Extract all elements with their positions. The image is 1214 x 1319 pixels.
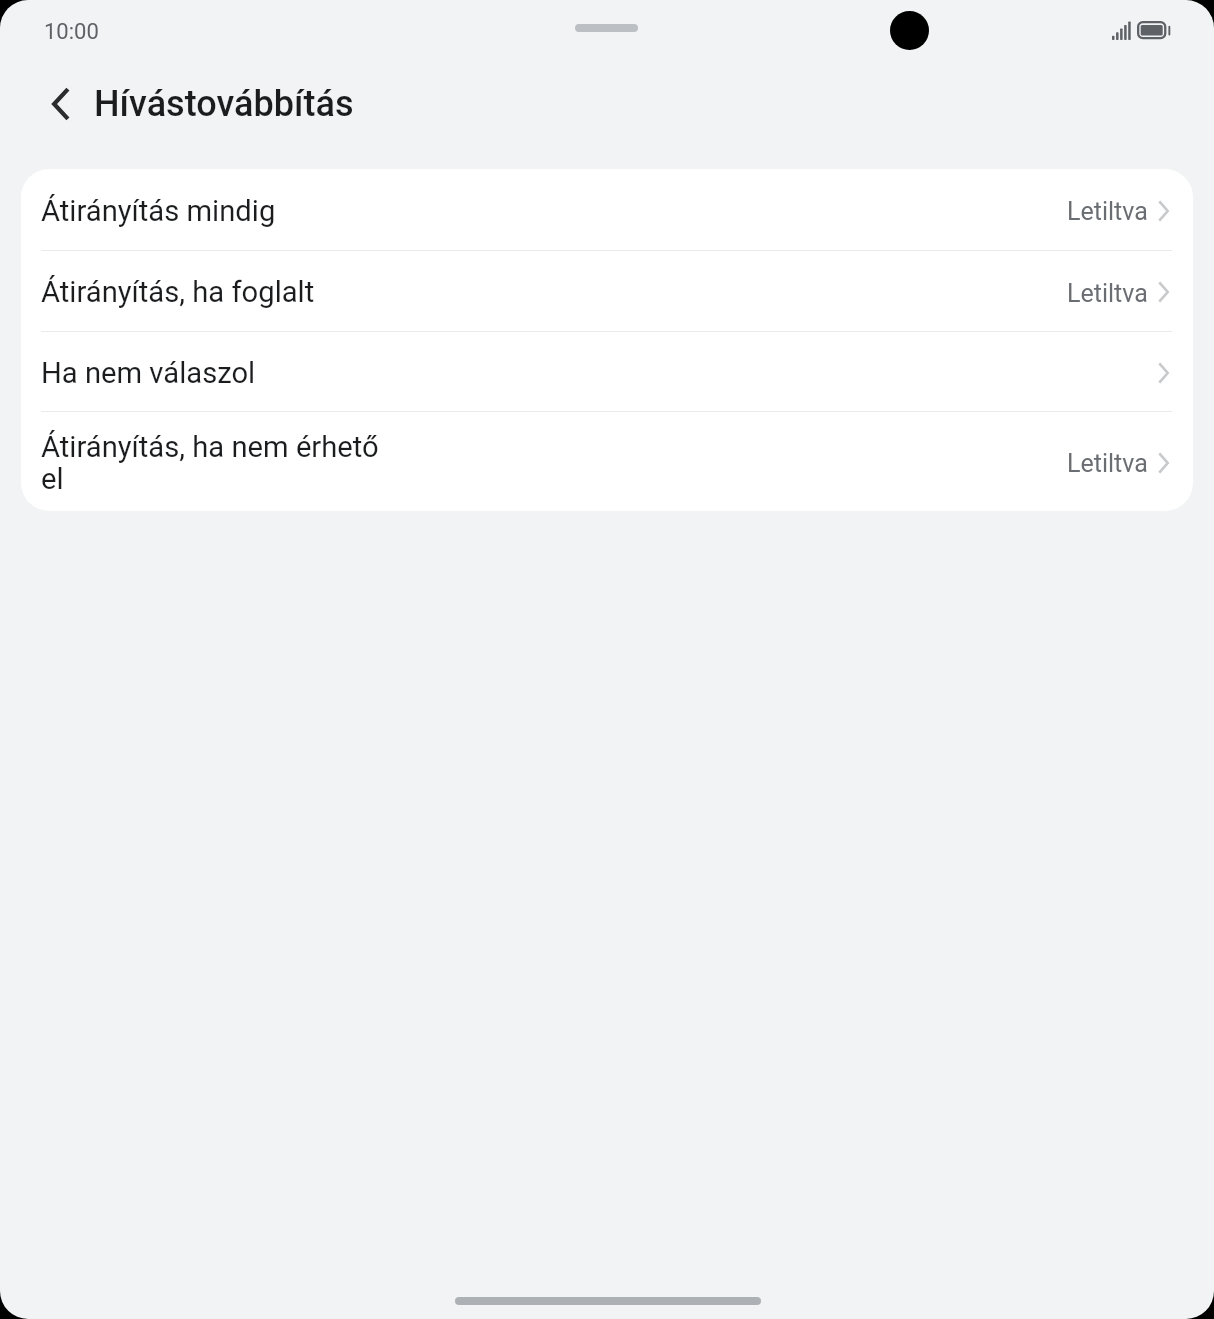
staticText: Átirányítás, ha foglalt <box>41 277 315 309</box>
staticText: Átirányítás mindig <box>41 196 276 228</box>
staticText: 10:00 <box>44 19 99 45</box>
button[interactable]: Back <box>37 80 85 128</box>
button[interactable]: Ha nem válaszol <box>21 332 1193 411</box>
button[interactable]: Átirányítás, ha foglalt <box>21 251 1193 331</box>
staticText: Átirányítás, ha nem érhető el <box>41 432 401 496</box>
staticText: Hívástovábbítás <box>94 83 354 125</box>
staticText: Letiltva <box>1067 197 1148 226</box>
staticText: Letiltva <box>1067 279 1148 308</box>
button[interactable]: Átirányítás, ha nem érhető el <box>21 412 1193 511</box>
staticText: Ha nem válaszol <box>41 358 256 390</box>
staticText: Letiltva <box>1067 449 1148 478</box>
button[interactable]: Átirányítás mindig <box>21 169 1193 250</box>
